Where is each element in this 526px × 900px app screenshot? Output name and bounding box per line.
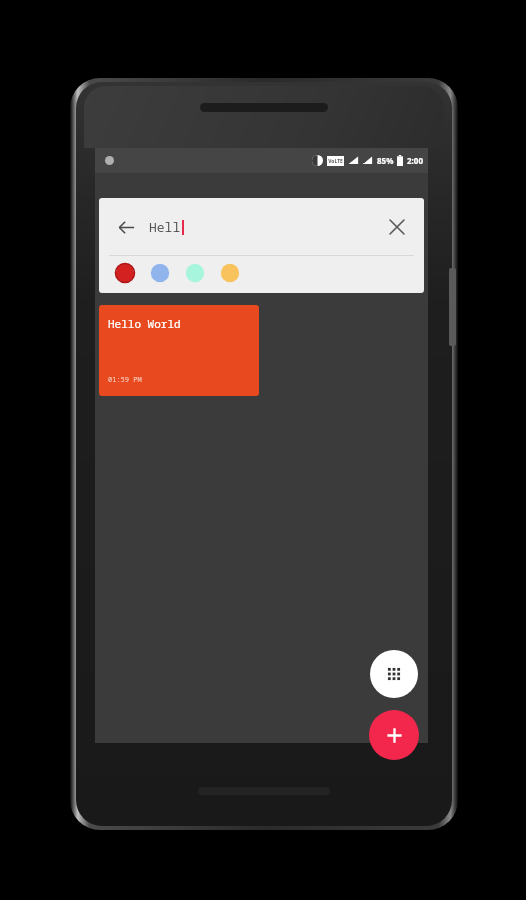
button[interactable]: Hello World [99, 305, 259, 396]
button[interactable]: Layout grid [370, 650, 418, 698]
staticText: 85% [377, 155, 394, 166]
staticText: Hello World [108, 316, 181, 331]
button[interactable]: Colour [218, 261, 242, 285]
button[interactable]: Add note [369, 710, 419, 760]
button[interactable]: Colour [113, 261, 137, 285]
staticText: Hell [149, 218, 181, 236]
staticText: VoLTE [328, 158, 343, 165]
button[interactable]: Back [107, 208, 145, 246]
button[interactable]: Colour [183, 261, 207, 285]
button[interactable]: Clear search [380, 210, 414, 244]
staticText: 01:59 PM [108, 375, 142, 385]
staticText: 2:00 [407, 155, 423, 166]
button[interactable]: Colour [148, 261, 172, 285]
